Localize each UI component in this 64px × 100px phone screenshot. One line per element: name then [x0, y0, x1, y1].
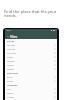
staticText: Private [7, 80, 14, 83]
staticText: Wifi [7, 88, 11, 91]
staticText: Parking [7, 96, 14, 99]
button[interactable]: Distance [5, 59, 57, 63]
staticText: Find the place that fits your needs. [4, 9, 59, 19]
staticText: Distance [7, 60, 15, 63]
staticText: Rating [7, 56, 13, 59]
staticText: Amenities [7, 84, 18, 87]
staticText: Kitchen [7, 92, 14, 95]
staticText: Place type [7, 72, 18, 75]
button[interactable]: Entire [5, 75, 57, 79]
button[interactable]: Newest [5, 63, 57, 67]
button[interactable]: Rating [5, 55, 57, 59]
staticText: Top picks [7, 44, 16, 47]
button[interactable]: Price high [5, 51, 57, 55]
button[interactable]: Reviews [5, 67, 57, 71]
staticText: Filters [10, 35, 18, 38]
staticText: 9:41 [7, 29, 11, 32]
staticText: Price low [7, 48, 15, 51]
button[interactable]: Back [6, 35, 9, 38]
button[interactable]: Private [5, 79, 57, 83]
staticText: Sort by [7, 40, 15, 43]
button[interactable]: Price low [5, 47, 57, 51]
staticText: Price high [7, 52, 16, 55]
staticText: Reviews [7, 68, 15, 71]
button[interactable]: Top picks [5, 43, 57, 47]
button[interactable]: Kitchen [5, 91, 57, 95]
button[interactable]: Parking [5, 95, 57, 99]
staticText: Entire [7, 76, 13, 79]
button[interactable]: Wifi [5, 87, 57, 91]
staticText: Newest [7, 64, 14, 67]
